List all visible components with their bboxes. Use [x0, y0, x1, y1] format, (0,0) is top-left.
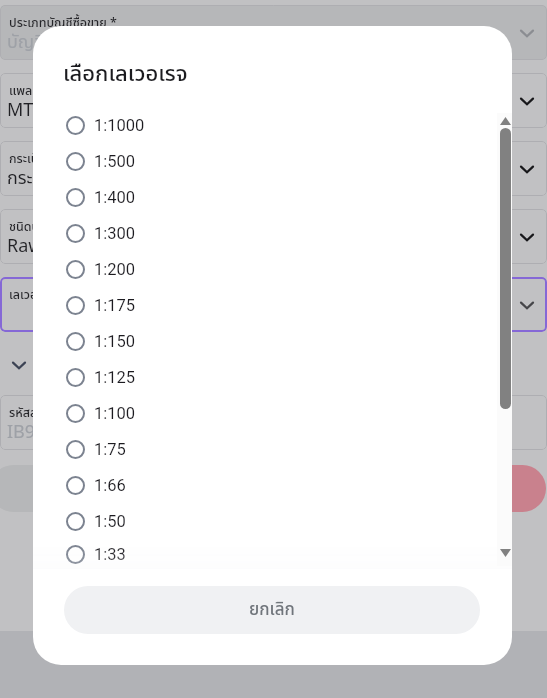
staticText: ประเภทบัญชีซื้อขาย * — [9, 14, 117, 33]
staticText: ตัวเลือกเพิ่มเติม — [37, 354, 132, 377]
staticText: แพลตฟอร์ม * — [9, 82, 81, 101]
staticText: กระเป๋าเงิน * — [9, 150, 72, 169]
button[interactable]: 1:300 — [33, 215, 512, 251]
staticText: รหัสส่งเสริมการขาย — [9, 404, 108, 423]
staticText: 1:125 — [94, 368, 136, 387]
staticText: 1:150 — [94, 332, 136, 351]
staticText: 1:200 — [94, 260, 136, 279]
button[interactable]: 1:1000 — [33, 107, 512, 143]
staticText: 1:175 — [94, 296, 136, 315]
staticText: ชนิดบัญชี * — [9, 218, 68, 237]
button[interactable]: 1:50 — [33, 503, 512, 539]
button[interactable]: 1:100 — [33, 395, 512, 431]
button[interactable]: ประเภทบัญชีซื้อขาย * — [0, 5, 547, 60]
other: Scroll down — [500, 549, 511, 557]
button[interactable]: ยกเลิก — [64, 586, 480, 634]
staticText: 1:300 — [94, 224, 136, 243]
staticText: เลือกเลเวอเรจ — [63, 58, 188, 91]
staticText: 1:500 — [94, 152, 136, 171]
other: Scroll up — [500, 117, 511, 125]
button[interactable]: 1:175 — [33, 287, 512, 323]
button[interactable]: 1:33 — [33, 539, 512, 569]
button[interactable]: 1:200 — [33, 251, 512, 287]
button[interactable]: 1:66 — [33, 467, 512, 503]
button[interactable]: กระเป๋าเงิน * — [0, 141, 547, 196]
button[interactable]: 1:75 — [33, 431, 512, 467]
button[interactable] — [0, 465, 240, 512]
staticText: กระเป๋าเงินหลัก — [7, 165, 113, 192]
button[interactable]: ตัวเลือกเพิ่มเติม — [7, 345, 547, 385]
staticText: 1:66 — [94, 476, 126, 495]
button[interactable] — [296, 465, 546, 512]
staticText: 1:50 — [94, 512, 126, 531]
button[interactable]: แพลตฟอร์ม * — [0, 73, 547, 128]
staticText: 1:400 — [94, 188, 136, 207]
button[interactable]: 1:400 — [33, 179, 512, 215]
button[interactable]: 1:500 — [33, 143, 512, 179]
button[interactable]: ชนิดบัญชี * — [0, 209, 547, 264]
staticText: MT5 — [7, 97, 44, 124]
button[interactable]: เลเวอเรจ * — [0, 277, 547, 332]
staticText: ยกเลิก — [249, 597, 295, 623]
button[interactable]: 1:125 — [33, 359, 512, 395]
staticText: Raw Spread — [7, 233, 107, 260]
button[interactable]: 1:150 — [33, 323, 512, 359]
staticText: 1:100 — [94, 404, 136, 423]
staticText: 1:1000 — [94, 116, 145, 135]
staticText: เลเวอเรจ * — [9, 286, 65, 305]
staticText: IB9999 — [7, 419, 66, 446]
staticText: 1:33 — [94, 545, 126, 564]
staticText: 1:75 — [94, 440, 126, 459]
staticText: บัญชีซื้อขาย — [7, 29, 93, 56]
button[interactable]: รหัสส่งเสริมการขาย — [0, 395, 547, 450]
